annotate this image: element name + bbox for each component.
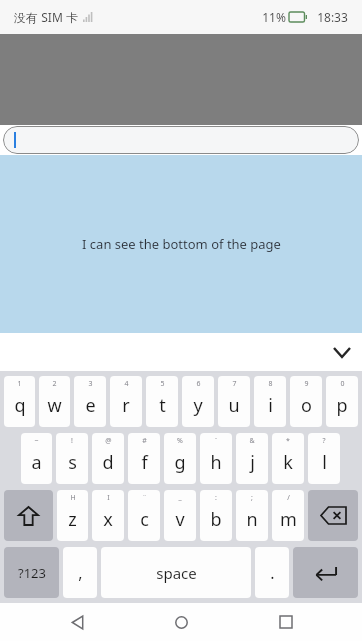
button[interactable]: ! xyxy=(56,433,88,484)
staticText: : xyxy=(215,493,217,503)
staticText: c xyxy=(140,507,149,532)
button[interactable]: Enter xyxy=(293,547,358,598)
button[interactable]: , xyxy=(63,547,97,598)
staticText: n xyxy=(246,507,258,532)
staticText: 1 xyxy=(17,379,22,389)
staticText: ~ xyxy=(34,436,39,446)
staticText: ` xyxy=(215,436,217,446)
staticText: x xyxy=(103,507,113,532)
staticText: i xyxy=(268,393,273,418)
button[interactable]: 3 xyxy=(74,376,106,427)
staticText: space xyxy=(156,563,197,583)
button[interactable]: / xyxy=(272,490,304,541)
button[interactable]: : xyxy=(200,490,232,541)
staticText: , xyxy=(78,562,83,584)
staticText: # xyxy=(142,436,147,446)
other: Enter xyxy=(314,565,338,581)
staticText: 11% xyxy=(262,9,286,25)
staticText: y xyxy=(193,393,203,418)
staticText: h xyxy=(210,450,222,475)
staticText: ?123 xyxy=(18,564,46,582)
button[interactable]: I xyxy=(92,490,124,541)
staticText: ; xyxy=(251,493,253,503)
staticText: v xyxy=(175,507,185,532)
staticText: _ xyxy=(178,493,182,503)
staticText: m xyxy=(280,507,297,532)
button[interactable]: ?123 xyxy=(4,547,59,598)
button[interactable]: 9 xyxy=(290,376,322,427)
button[interactable] xyxy=(3,126,359,154)
staticText: ? xyxy=(322,436,326,446)
staticText: t xyxy=(159,393,166,418)
staticText: s xyxy=(68,450,77,475)
button[interactable]: 6 xyxy=(182,376,214,427)
button[interactable]: Hide keyboard xyxy=(322,333,362,371)
button[interactable]: Home xyxy=(153,603,209,641)
staticText: 4 xyxy=(124,379,129,389)
button[interactable]: @ xyxy=(92,433,124,484)
staticText: e xyxy=(85,393,96,418)
button[interactable]: H xyxy=(57,490,88,541)
staticText: 18:33 xyxy=(317,9,348,25)
staticText: @ xyxy=(105,436,112,446)
button[interactable]: % xyxy=(164,433,196,484)
button[interactable]: . xyxy=(255,547,289,598)
staticText: * xyxy=(286,436,290,446)
staticText: % xyxy=(177,436,183,446)
staticText: 7 xyxy=(232,379,237,389)
button[interactable]: Back xyxy=(49,603,105,641)
staticText: a xyxy=(31,450,42,475)
button[interactable]: 8 xyxy=(254,376,286,427)
button[interactable]: ~ xyxy=(21,433,52,484)
staticText: & xyxy=(249,436,255,446)
staticText: b xyxy=(210,507,222,532)
button[interactable]: & xyxy=(236,433,268,484)
staticText: w xyxy=(47,393,62,418)
button[interactable]: Shift xyxy=(4,490,53,541)
staticText: 5 xyxy=(160,379,165,389)
staticText: 没有 SIM 卡 xyxy=(14,9,78,25)
button[interactable]: 0 xyxy=(326,376,358,427)
staticText: 2 xyxy=(52,379,57,389)
staticText: f xyxy=(141,450,148,475)
button[interactable]: 1 xyxy=(4,376,35,427)
staticText: H xyxy=(70,493,76,503)
staticText: ¨ xyxy=(142,493,147,503)
other: Shift xyxy=(19,507,38,525)
staticText: I xyxy=(107,493,110,503)
staticText: k xyxy=(283,450,293,475)
button[interactable]: # xyxy=(128,433,160,484)
staticText: j xyxy=(250,450,255,475)
button[interactable]: Delete xyxy=(308,490,358,541)
staticText: I can see the bottom of the page xyxy=(82,235,281,253)
button[interactable]: ; xyxy=(236,490,268,541)
staticText: z xyxy=(68,507,77,532)
other: Delete xyxy=(321,507,346,524)
staticText: . xyxy=(270,562,275,584)
button[interactable]: 7 xyxy=(218,376,250,427)
staticText: 9 xyxy=(304,379,309,389)
button[interactable]: 2 xyxy=(39,376,70,427)
staticText: q xyxy=(14,393,26,418)
staticText: 3 xyxy=(88,379,93,389)
button[interactable]: * xyxy=(272,433,304,484)
staticText: u xyxy=(228,393,240,418)
staticText: / xyxy=(287,493,290,503)
staticText: 0 xyxy=(340,379,345,389)
staticText: p xyxy=(336,393,348,418)
button[interactable]: 5 xyxy=(146,376,178,427)
staticText: o xyxy=(301,393,312,418)
button[interactable]: _ xyxy=(164,490,196,541)
button[interactable]: ? xyxy=(308,433,340,484)
staticText: g xyxy=(174,450,186,475)
button[interactable]: ` xyxy=(200,433,232,484)
staticText: 6 xyxy=(196,379,201,389)
staticText: d xyxy=(102,450,114,475)
staticText: ! xyxy=(71,436,73,446)
button[interactable]: ¨ xyxy=(128,490,160,541)
staticText: r xyxy=(122,393,130,418)
button[interactable]: 4 xyxy=(110,376,142,427)
button[interactable]: space xyxy=(101,547,251,598)
button[interactable]: Recents xyxy=(258,603,314,641)
staticText: 8 xyxy=(268,379,273,389)
